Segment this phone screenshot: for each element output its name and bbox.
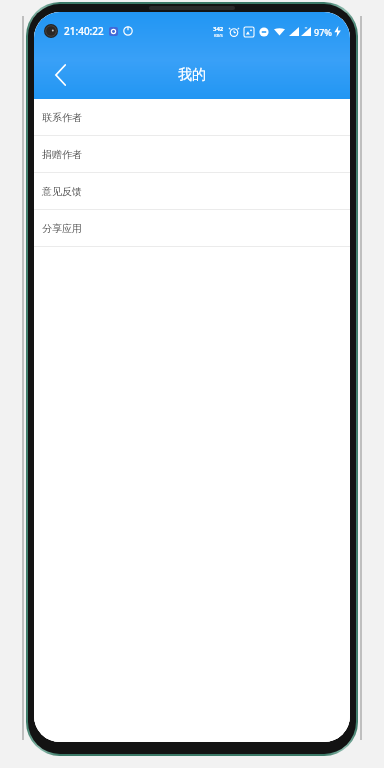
staticText: 我的 [178,66,206,84]
staticText: KB/S [214,33,223,38]
staticText: 342 [213,25,224,33]
button[interactable]: 意见反馈 [34,173,350,209]
staticText: 联系作者 [42,111,82,124]
button[interactable]: 分享应用 [34,210,350,246]
button[interactable]: 捐赠作者 [34,136,350,172]
staticText: 意见反馈 [42,185,82,198]
staticText: 捐赠作者 [42,148,82,161]
staticText: 分享应用 [42,222,82,235]
button[interactable]: Back [40,54,82,96]
staticText: 21:40:22 [64,24,104,38]
button[interactable]: 联系作者 [34,99,350,135]
staticText: 97% [314,26,332,38]
